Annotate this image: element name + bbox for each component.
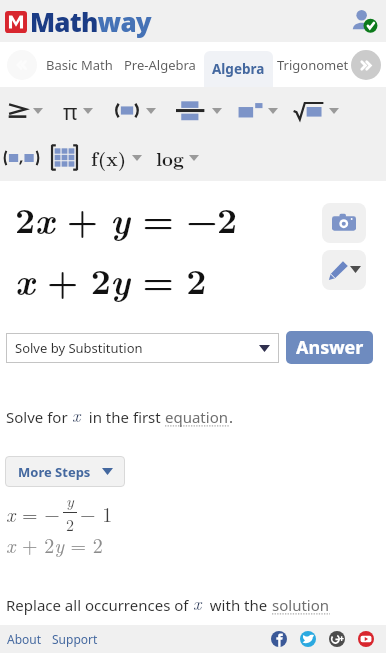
staticText: Support xyxy=(52,631,98,647)
button[interactable]: Answer xyxy=(286,331,373,364)
button[interactable]: Pre-Algebra xyxy=(119,50,201,80)
staticText: Answer xyxy=(296,335,364,360)
staticText: Basic Math xyxy=(46,56,113,74)
button[interactable]: f(x) xyxy=(87,140,152,175)
button[interactable]: Math tool xyxy=(48,140,81,175)
button[interactable]: Google Plus xyxy=(329,631,345,647)
button[interactable]: Next subjects xyxy=(351,50,381,80)
staticText: Algebra xyxy=(212,60,265,78)
button[interactable]: Math tool xyxy=(111,98,172,123)
staticText: x + 2y = 2 xyxy=(6,530,103,558)
button[interactable]: Edit problem xyxy=(322,250,366,290)
button[interactable]: Algebra xyxy=(204,51,273,87)
button[interactable]: About xyxy=(4,626,45,652)
staticText: f(x) xyxy=(91,144,127,171)
staticText: x + 2y = 2 xyxy=(15,254,206,305)
button[interactable]: Math tool xyxy=(61,92,111,130)
button[interactable]: Facebook xyxy=(271,631,287,647)
staticText: log xyxy=(156,144,184,171)
button[interactable]: Math tool xyxy=(235,98,291,124)
button[interactable]: Basic Math xyxy=(41,50,118,80)
staticText: About xyxy=(7,631,42,647)
staticText: x xyxy=(72,402,81,427)
button[interactable]: Account xyxy=(346,4,380,38)
staticText: . xyxy=(229,407,234,427)
staticText: Pre-Algebra xyxy=(124,56,196,74)
button[interactable]: Twitter xyxy=(300,631,316,647)
button[interactable]: Support xyxy=(49,626,101,652)
staticText: x xyxy=(193,590,202,615)
staticText: 2 xyxy=(66,513,75,536)
button[interactable]: Math tool xyxy=(291,97,349,125)
staticText: Mathway xyxy=(30,4,151,39)
staticText: Replace all occurrences of xyxy=(6,595,193,615)
button[interactable]: Math tool xyxy=(172,96,235,126)
staticText: Trigonomet xyxy=(277,56,349,74)
staticText: More Steps xyxy=(18,463,91,481)
button[interactable]: Solve by Substitution xyxy=(6,333,279,363)
button[interactable]: More Steps xyxy=(5,456,125,487)
button[interactable]: Math tool xyxy=(1,144,42,172)
staticText: π xyxy=(63,96,78,126)
staticText: − 1 xyxy=(80,499,113,527)
staticText: y xyxy=(66,489,74,512)
staticText: Solve for xyxy=(6,407,72,427)
button[interactable]: Trigonomet xyxy=(273,50,351,80)
staticText: 2x + y = −2 xyxy=(15,193,237,244)
staticText: solution xyxy=(272,595,330,615)
staticText: in the first xyxy=(81,407,165,427)
staticText: Solve by Substitution xyxy=(15,339,259,357)
staticText: x = − xyxy=(6,499,60,527)
button[interactable]: log xyxy=(152,140,211,175)
button[interactable]: Take photo of problem xyxy=(322,203,366,243)
staticText: with the xyxy=(202,595,272,615)
button[interactable]: YouTube xyxy=(358,631,374,647)
button[interactable]: Math tool xyxy=(5,98,61,123)
staticText: equation xyxy=(165,407,229,427)
